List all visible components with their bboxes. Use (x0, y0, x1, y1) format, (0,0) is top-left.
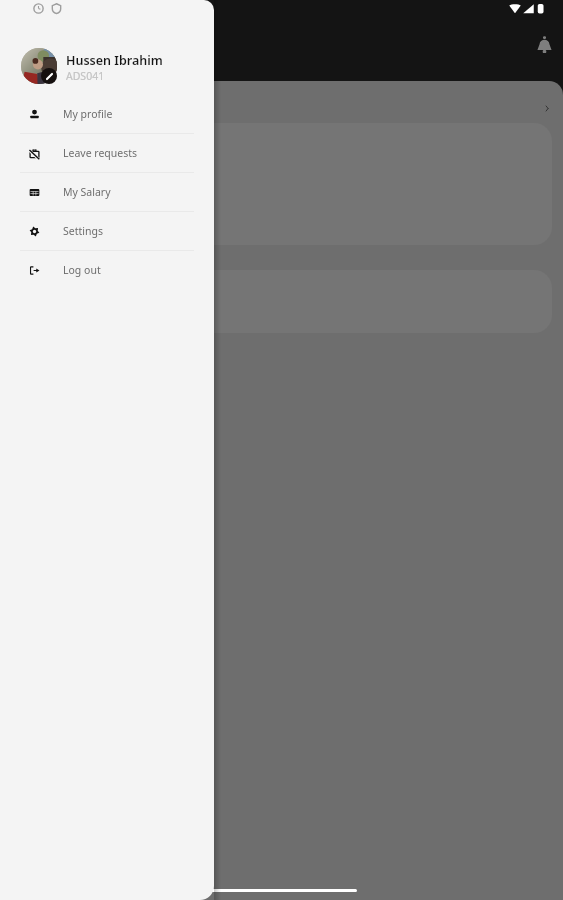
staticText: My profile (63, 107, 113, 121)
button[interactable]: My Salary (0, 173, 214, 211)
button[interactable]: Notifications (528, 29, 560, 61)
button[interactable]: Leave requests (0, 134, 214, 172)
staticText: Log out (63, 263, 101, 277)
button[interactable]: My profile (0, 95, 214, 133)
button[interactable]: Log out (0, 251, 214, 289)
button[interactable]: Open details (532, 93, 562, 123)
staticText: Leave requests (63, 146, 138, 160)
staticText: Settings (63, 224, 103, 238)
button[interactable] (10, 270, 552, 333)
button[interactable]: Hussen Ibrahim (0, 44, 214, 96)
staticText: Hussen Ibrahim (66, 52, 163, 69)
staticText: My Salary (63, 185, 111, 199)
staticText: ADS041 (66, 69, 105, 83)
button[interactable]: Settings (0, 212, 214, 250)
button[interactable] (10, 123, 552, 245)
